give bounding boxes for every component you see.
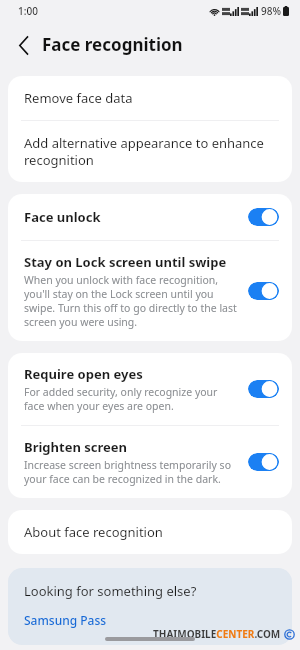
- button[interactable]: Face unlock: [8, 194, 292, 240]
- staticText: Add alternative appearance to enhance re…: [24, 134, 274, 169]
- staticText: Require open eyes: [24, 365, 143, 383]
- button[interactable]: Toggle on: [248, 380, 279, 398]
- button[interactable]: Back: [9, 30, 39, 60]
- button[interactable]: Toggle on: [248, 282, 279, 300]
- button[interactable]: Require open eyes: [8, 353, 292, 425]
- staticText: For added security, only recognize your …: [24, 385, 240, 413]
- button[interactable]: Add alternative appearance to enhance re…: [8, 121, 292, 182]
- staticText: Samsung Pass: [24, 612, 107, 628]
- staticText: 1:00: [18, 4, 38, 18]
- button[interactable]: Samsung Pass: [24, 612, 107, 628]
- button[interactable]: Stay on Lock screen until swipe: [8, 241, 292, 341]
- staticText: Remove face data: [24, 89, 133, 107]
- button[interactable]: Brighten screen: [8, 426, 292, 498]
- button[interactable]: Toggle on: [248, 453, 279, 471]
- staticText: Increase screen brightness temporarily s…: [24, 458, 240, 486]
- staticText: When you unlock with face recognition, y…: [24, 273, 240, 329]
- staticText: Looking for something else?: [24, 582, 197, 600]
- staticText: 98%: [261, 4, 281, 18]
- button[interactable]: Remove face data: [8, 76, 292, 120]
- staticText: Stay on Lock screen until swipe: [24, 253, 227, 271]
- button[interactable]: About face recognition: [8, 510, 292, 554]
- button[interactable]: Toggle on: [248, 208, 279, 226]
- staticText: About face recognition: [24, 523, 163, 541]
- staticText: Face recognition: [42, 33, 183, 56]
- staticText: THAIMOBILECENTER.COM: [153, 627, 281, 641]
- staticText: Brighten screen: [24, 438, 127, 456]
- staticText: Face unlock: [24, 208, 101, 226]
